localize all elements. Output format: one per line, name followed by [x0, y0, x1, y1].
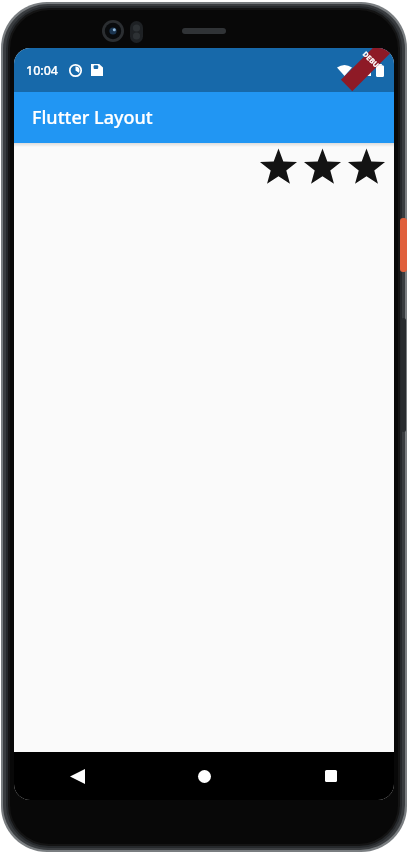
button[interactable]: Recent apps: [307, 752, 355, 800]
staticText: 10:04: [26, 62, 59, 79]
button[interactable]: Star: [256, 145, 300, 189]
button[interactable]: Back: [53, 752, 101, 800]
button[interactable]: Home: [180, 752, 228, 800]
button[interactable]: Star: [344, 145, 388, 189]
staticText: DEBUG: [360, 50, 385, 74]
button[interactable]: Star: [300, 145, 344, 189]
staticText: Flutter Layout: [32, 105, 153, 130]
